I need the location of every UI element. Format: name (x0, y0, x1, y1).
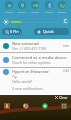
staticText: Hyperion Showcase (12, 69, 49, 74)
staticText: Touch for other options (12, 60, 51, 65)
staticText: Connected as a media device (12, 55, 67, 60)
button[interactable]: Location (18, 1, 26, 9)
button[interactable]: Chrome (23, 103, 29, 109)
staticText: S Finder (10, 29, 19, 34)
button[interactable]: Quick connect (34, 28, 69, 35)
button[interactable]: Apps (61, 103, 67, 109)
staticText: New voicemail (12, 41, 40, 46)
staticText: now (63, 44, 69, 48)
button[interactable]: Contacts (4, 103, 10, 109)
button[interactable]: Connected as a media device (0, 53, 71, 67)
staticText: Hello world! (12, 79, 32, 84)
button[interactable]: Wi-Fi (5, 1, 13, 9)
staticText: Tip (12, 74, 18, 79)
staticText: Quick connect (43, 29, 66, 34)
button[interactable]: WhatsApp (42, 103, 48, 109)
staticText: 2:44 (63, 69, 69, 73)
button[interactable]: Rotate (58, 1, 66, 9)
button[interactable]: Bluetooth (45, 1, 53, 9)
button[interactable]: Clear (54, 95, 69, 100)
button[interactable]: User profile (62, 18, 69, 25)
button[interactable]: New voicemail (0, 39, 71, 52)
button[interactable]: S Finder (2, 28, 22, 35)
staticText: Dev +1 403-437-1700 (12, 46, 47, 51)
staticText: Clear (59, 95, 68, 100)
button[interactable]: Sound (31, 1, 39, 9)
staticText: 3 new notifications (12, 86, 43, 91)
button[interactable]: Hyperion Showcase (0, 68, 71, 95)
staticText: C (64, 18, 68, 25)
